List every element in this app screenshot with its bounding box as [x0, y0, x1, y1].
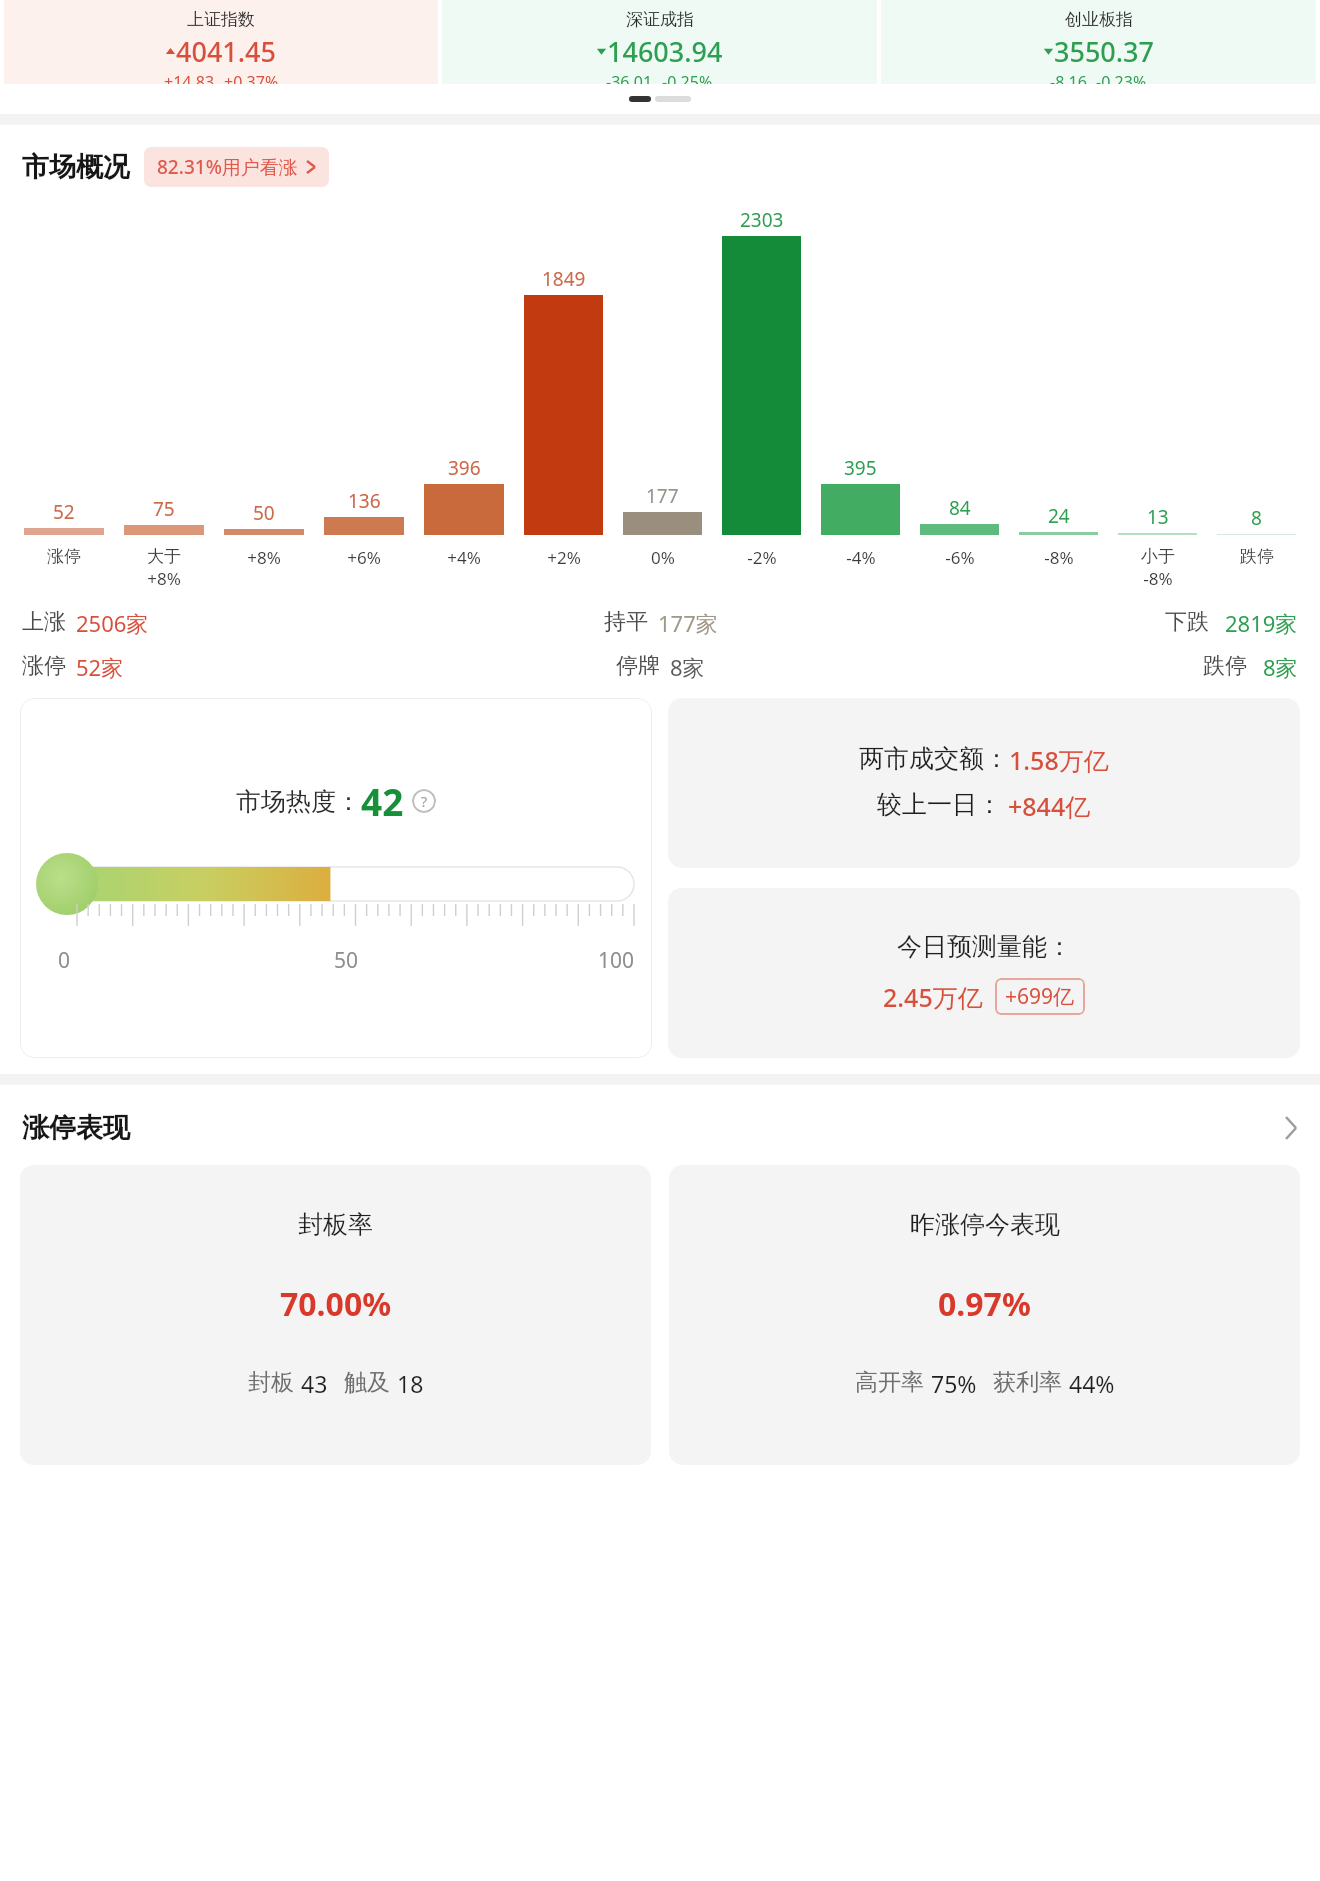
- staticText: 84: [949, 495, 971, 521]
- staticText: 2819家: [1225, 608, 1298, 638]
- staticText: 136: [348, 488, 381, 514]
- button[interactable]: 封板率: [20, 1165, 651, 1465]
- staticText: 下跌: [1165, 608, 1209, 636]
- staticText: +4%: [447, 546, 481, 569]
- staticText: 获利率: [993, 1368, 1062, 1397]
- staticText: 8家: [1263, 652, 1298, 682]
- staticText: 市场热度：: [236, 786, 361, 817]
- staticText: 177: [646, 483, 679, 509]
- staticText: 1.58万亿: [1009, 743, 1109, 777]
- staticText: 0%: [651, 546, 675, 569]
- staticText: 小于: [1141, 546, 1175, 567]
- staticText: -6%: [945, 546, 975, 569]
- staticText: +844亿: [1008, 789, 1091, 823]
- staticText: +0.37%: [224, 71, 279, 84]
- staticText: 深证成指: [626, 9, 694, 30]
- staticText: 0.97%: [938, 1282, 1031, 1326]
- staticText: 18: [397, 1368, 424, 1399]
- button[interactable]: 市场热度：: [20, 698, 652, 1058]
- button[interactable]: 今日预测量能：: [668, 888, 1300, 1058]
- staticText: 396: [448, 455, 481, 481]
- staticText: 42: [361, 776, 404, 826]
- staticText: 涨停: [22, 652, 66, 680]
- staticText: 大于: [147, 546, 181, 567]
- staticText: 13: [1147, 504, 1169, 530]
- staticText: 上证指数: [187, 9, 255, 30]
- button[interactable]: 上证指数: [4, 0, 438, 84]
- staticText: 触及: [344, 1368, 390, 1397]
- staticText: 2303: [740, 207, 784, 233]
- staticText: 4041.45: [176, 33, 277, 70]
- staticText: 70.00%: [280, 1282, 392, 1326]
- staticText: -4%: [846, 546, 876, 569]
- button[interactable]: 说明: [412, 789, 436, 813]
- staticText: 持平: [604, 608, 648, 636]
- staticText: 封板率: [298, 1209, 373, 1240]
- staticText: +6%: [347, 546, 381, 569]
- staticText: 24: [1048, 503, 1070, 529]
- button[interactable]: 两市成交额：: [668, 698, 1300, 868]
- staticText: 3550.37: [1054, 33, 1155, 70]
- staticText: 14603.94: [607, 33, 723, 70]
- staticText: 8: [1251, 505, 1262, 531]
- staticText: 涨停: [47, 546, 81, 567]
- button[interactable]: 昨涨停今表现: [669, 1165, 1300, 1465]
- staticText: 上涨: [22, 608, 66, 636]
- staticText: 较上一日：: [877, 789, 1002, 820]
- staticText: 50: [253, 500, 275, 526]
- staticText: 50: [250, 946, 442, 975]
- staticText: +8%: [247, 546, 281, 569]
- staticText: 两市成交额：: [859, 743, 1009, 774]
- staticText: -0.25%: [662, 71, 713, 84]
- staticText: 82.31%用户看涨: [157, 154, 298, 180]
- button[interactable]: 82.31%用户看涨: [144, 147, 329, 187]
- staticText: +2%: [547, 546, 581, 569]
- staticText: 100: [442, 946, 634, 975]
- staticText: -36.01: [606, 71, 653, 84]
- staticText: 8家: [670, 652, 705, 682]
- staticText: 0: [58, 946, 250, 975]
- staticText: 1849: [542, 266, 586, 292]
- staticText: 395: [844, 455, 877, 481]
- staticText: 涨停表现: [22, 1111, 130, 1145]
- staticText: +8%: [147, 567, 181, 590]
- staticText: 跌停: [1240, 546, 1274, 567]
- button[interactable]: 创业板指: [881, 0, 1316, 84]
- staticText: 2.45万亿: [883, 980, 983, 1014]
- other: 更多: [1284, 1115, 1298, 1141]
- staticText: -8.16: [1050, 71, 1087, 84]
- staticText: 市场概况: [22, 150, 130, 184]
- button[interactable]: 深证成指: [442, 0, 877, 84]
- staticText: -8%: [1044, 546, 1074, 569]
- button[interactable]: 涨停表现: [0, 1085, 1320, 1165]
- staticText: 创业板指: [1065, 9, 1133, 30]
- staticText: 52家: [76, 652, 124, 682]
- staticText: 昨涨停今表现: [910, 1209, 1060, 1240]
- staticText: 177家: [658, 608, 718, 638]
- staticText: +699亿: [1005, 982, 1075, 1011]
- staticText: -2%: [747, 546, 777, 569]
- staticText: 跌停: [1203, 652, 1247, 680]
- staticText: -8%: [1143, 567, 1173, 590]
- staticText: 52: [53, 499, 75, 525]
- staticText: 2506家: [76, 608, 149, 638]
- staticText: 高开率: [855, 1368, 924, 1397]
- staticText: 75: [153, 496, 175, 522]
- staticText: 停牌: [616, 652, 660, 680]
- staticText: -0.23%: [1096, 71, 1147, 84]
- staticText: 今日预测量能：: [897, 931, 1072, 962]
- staticText: ?: [421, 792, 428, 811]
- staticText: +14.83: [164, 71, 215, 84]
- staticText: 75%: [931, 1368, 977, 1399]
- staticText: 封板: [248, 1368, 294, 1397]
- staticText: 43: [301, 1368, 328, 1399]
- staticText: 44%: [1069, 1368, 1115, 1399]
